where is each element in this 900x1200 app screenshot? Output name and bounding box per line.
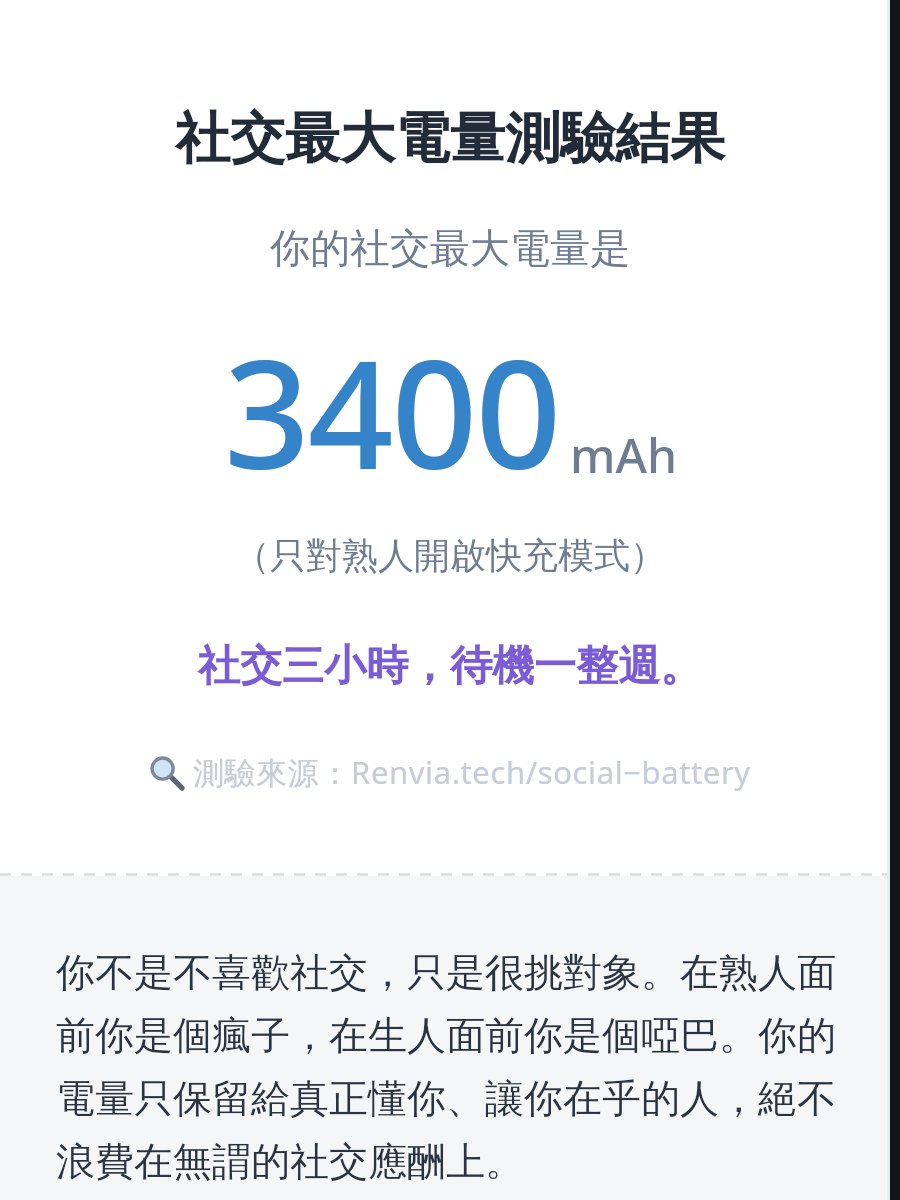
staticText: mAh bbox=[570, 422, 677, 487]
staticText: 前你是個瘋子，在生人面前你是個啞巴。你的 bbox=[56, 1011, 836, 1060]
staticText: 3400 bbox=[224, 309, 560, 513]
staticText: 社交三小時，待機一整週。 bbox=[0, 640, 900, 693]
staticText: 社交最大電量測驗結果 bbox=[16, 104, 884, 173]
staticText: 你不是不喜歡社交，只是很挑對象。在熟人面 bbox=[56, 948, 836, 997]
staticText: 你的社交最大電量是 bbox=[0, 223, 900, 273]
staticText: 測驗來源：Renvia.tech/social−battery bbox=[193, 751, 751, 793]
staticText: 浪費在無謂的社交應酬上。 bbox=[56, 1137, 524, 1186]
staticText: （只對熟人開啟快充模式） bbox=[0, 533, 900, 578]
staticText: 電量只保留給真正懂你、讓你在乎的人，絕不 bbox=[56, 1074, 836, 1123]
other: Search source bbox=[149, 755, 183, 789]
button[interactable]: Search source bbox=[0, 747, 900, 797]
